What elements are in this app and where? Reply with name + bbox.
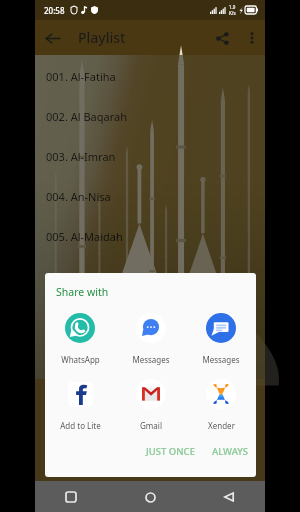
button[interactable]: Gmail [116, 379, 186, 431]
staticText: 20:58 [44, 5, 65, 16]
staticText: Share with [56, 285, 109, 299]
button[interactable]: 003. Al-Imran [35, 149, 265, 189]
button[interactable]: 006. Al-Anam [35, 269, 265, 309]
staticText: 005. Al-Maidah [46, 229, 123, 244]
button[interactable]: Messages [186, 313, 256, 365]
button[interactable]: Xender [186, 379, 256, 431]
button[interactable]: 004. An-Nisa [35, 189, 265, 229]
button[interactable]: Back [215, 483, 243, 511]
staticText: Messages [202, 354, 240, 365]
staticText: 006. Al-Anam [46, 269, 115, 284]
button[interactable]: Messages [116, 313, 186, 365]
staticText: Gmail [140, 420, 162, 431]
button[interactable]: ALWAYS [203, 438, 256, 465]
button[interactable]: JUST ONCE [138, 438, 203, 465]
staticText: ALWAYS [212, 445, 249, 458]
staticText: Add to Lite [60, 420, 101, 431]
staticText: Messages [132, 354, 170, 365]
staticText: 001. Al-Fatiha [46, 69, 116, 84]
staticText: 002. Al Baqarah [46, 109, 127, 124]
button[interactable]: Home [136, 483, 164, 511]
button[interactable]: 002. Al Baqarah [35, 109, 265, 149]
staticText: 1.0 [229, 4, 236, 10]
staticText: Playlist [78, 28, 126, 47]
staticText: 003. Al-Imran [46, 149, 116, 164]
button[interactable]: More options [238, 24, 265, 51]
staticText: Xender [208, 420, 235, 431]
button[interactable]: Share [206, 22, 238, 54]
staticText: WhatsApp [61, 354, 100, 365]
staticText: JUST ONCE [146, 445, 195, 458]
button[interactable]: Recents [57, 483, 85, 511]
button[interactable]: 001. Al-Fatiha [35, 69, 265, 109]
button[interactable]: Back [35, 21, 69, 55]
button[interactable]: 005. Al-Maidah [35, 229, 265, 269]
staticText: 004. An-Nisa [46, 189, 111, 204]
button[interactable]: WhatsApp [45, 313, 115, 365]
button[interactable]: Add to Lite [45, 379, 115, 431]
staticText: K/s [229, 10, 236, 16]
